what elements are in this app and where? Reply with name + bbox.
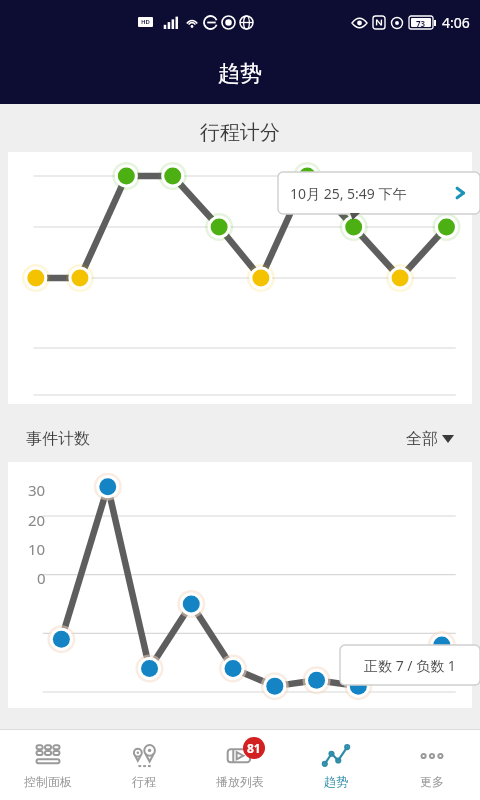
staticText: 全部: [406, 429, 438, 449]
other: 控制面板: [34, 742, 62, 770]
staticText: 行程计分: [200, 120, 280, 145]
staticText: 73: [416, 18, 426, 27]
staticText: 81: [247, 740, 261, 756]
staticText: 趋势: [324, 774, 348, 789]
staticText: 30: [28, 480, 46, 500]
staticText: 更多: [420, 774, 444, 789]
other: 趋势: [322, 742, 350, 770]
button[interactable]: 行程: [96, 730, 192, 800]
button[interactable]: 播放列表: [192, 730, 288, 800]
staticText: 趋势: [218, 60, 262, 88]
staticText: 4:06: [442, 13, 470, 32]
staticText: HD: [141, 18, 150, 26]
button[interactable]: 趋势: [288, 730, 384, 800]
staticText: 10月 25, 5:49 下午: [290, 184, 407, 203]
button[interactable]: 控制面板: [0, 730, 96, 800]
other: 播放列表: [226, 742, 254, 770]
staticText: 0: [37, 568, 46, 588]
staticText: 10: [28, 539, 46, 559]
other: 更多: [418, 742, 446, 770]
button[interactable]: 全部: [406, 429, 454, 449]
button[interactable]: 30: [8, 462, 472, 708]
staticText: 行程: [132, 774, 156, 789]
staticText: 20: [28, 510, 46, 530]
button[interactable]: 10月 25, 5:49 下午: [278, 172, 480, 214]
button[interactable]: 更多: [384, 730, 480, 800]
staticText: 事件计数: [26, 429, 90, 449]
staticText: 控制面板: [24, 774, 72, 789]
other: 行程: [130, 742, 158, 770]
staticText: 正数 7 / 负数 1: [364, 656, 456, 675]
button[interactable]: 正数 7 / 负数 1: [340, 645, 480, 685]
staticText: 播放列表: [216, 774, 264, 789]
button[interactable]: 10月 25, 5:49 下午: [8, 152, 472, 404]
